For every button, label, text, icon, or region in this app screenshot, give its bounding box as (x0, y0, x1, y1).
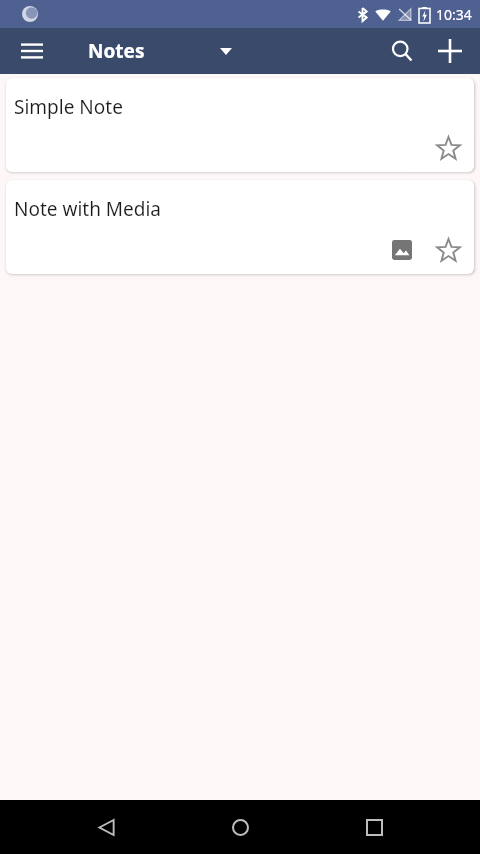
button[interactable]: Recent apps (346, 800, 402, 854)
button[interactable]: Mark as favorite (428, 128, 468, 168)
button[interactable]: Open navigation drawer (10, 29, 54, 73)
button[interactable]: Search (378, 28, 426, 74)
staticText: 10:34 (436, 5, 472, 24)
button[interactable]: Note with Media (6, 180, 474, 274)
button[interactable]: Attached media (384, 232, 420, 268)
button[interactable]: Add note (426, 28, 474, 74)
button[interactable]: Change note list (208, 33, 244, 69)
button[interactable]: Simple Note (6, 78, 474, 172)
button[interactable]: Home (212, 800, 268, 854)
button[interactable]: Mark as favorite (428, 230, 468, 270)
staticText: Simple Note (14, 94, 123, 120)
button[interactable]: Back (78, 800, 134, 854)
staticText: Note with Media (14, 196, 162, 222)
staticText: Notes (88, 38, 145, 64)
